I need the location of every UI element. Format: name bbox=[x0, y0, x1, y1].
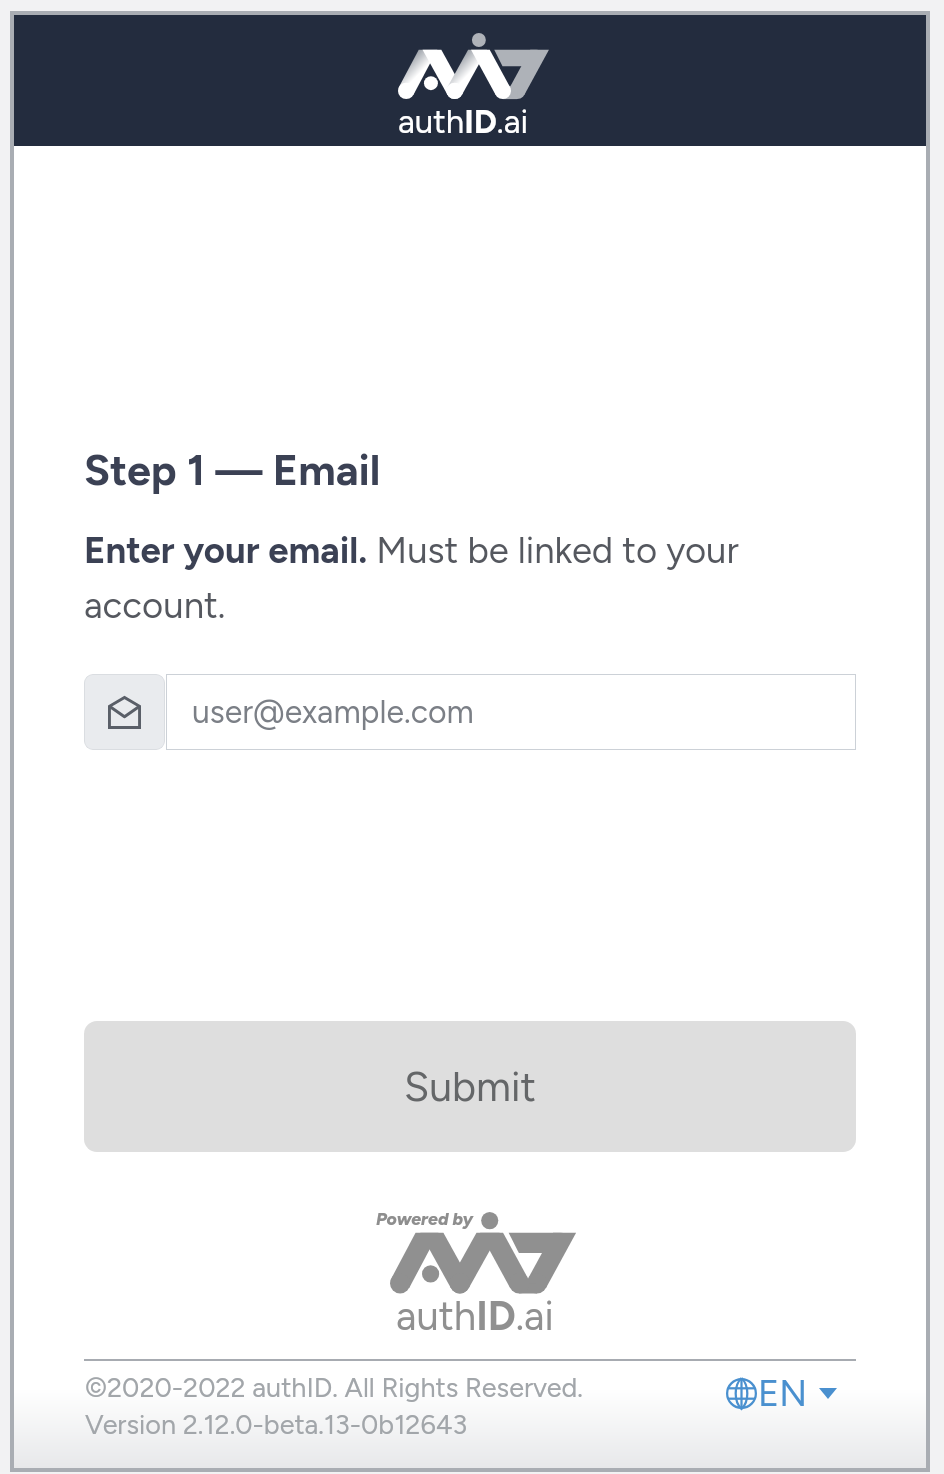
staticText: Step 1 — Email bbox=[84, 444, 381, 496]
staticText: user@example.com bbox=[192, 693, 474, 731]
staticText: ©2020-2022 authID. All Rights Reserved. bbox=[85, 1371, 583, 1403]
staticText: Submit bbox=[404, 1062, 536, 1111]
staticText: Powered by bbox=[376, 1208, 474, 1229]
button[interactable]: Email bbox=[84, 674, 165, 750]
staticText: Version 2.12.0-beta.13-0b12643 bbox=[85, 1408, 468, 1440]
staticText: Enter your email. Must be linked to your… bbox=[84, 528, 856, 627]
staticText: EN bbox=[758, 1372, 808, 1415]
staticText: authID.ai bbox=[398, 102, 529, 142]
button[interactable]: Submit bbox=[84, 1021, 856, 1152]
button[interactable]: user@example.com bbox=[166, 674, 856, 750]
button[interactable]: Change language, English bbox=[716, 1366, 847, 1421]
staticText: authID.ai bbox=[396, 1292, 554, 1340]
